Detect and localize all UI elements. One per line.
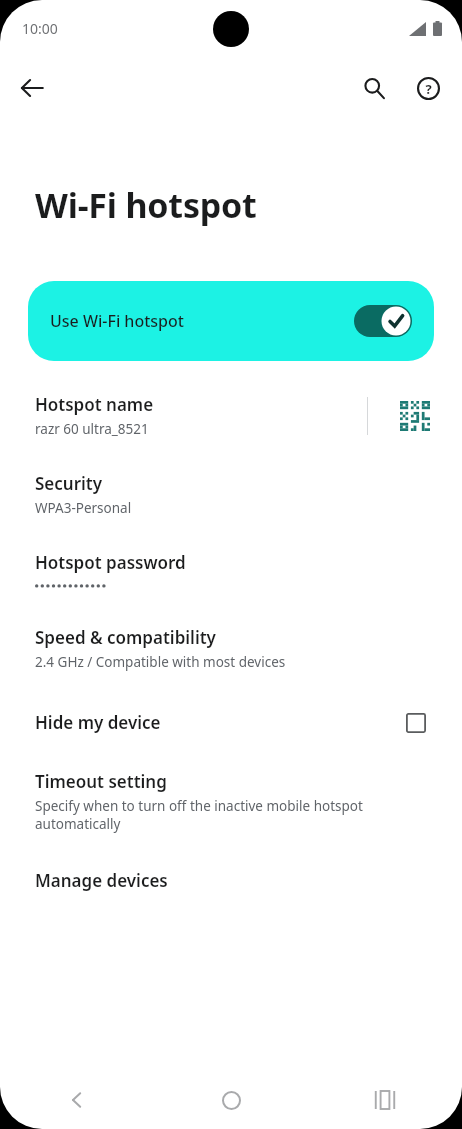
button[interactable]: Timeout setting xyxy=(0,766,462,837)
staticText: Use Wi-Fi hotspot xyxy=(50,310,354,332)
button[interactable]: Speed & compatibility xyxy=(0,622,462,675)
staticText: ? xyxy=(425,80,432,98)
button[interactable]: Home xyxy=(154,1071,308,1129)
staticText: 2.4 GHz / Compatible with most devices xyxy=(35,653,286,671)
staticText: Hotspot name xyxy=(35,393,154,416)
staticText: Security xyxy=(35,472,103,495)
button[interactable]: Share hotspot QR code xyxy=(368,389,462,443)
button[interactable]: Recent apps xyxy=(308,1071,462,1129)
button[interactable]: Hotspot name xyxy=(0,387,462,444)
staticText: razr 60 ultra_8521 xyxy=(35,420,149,438)
staticText: Timeout setting xyxy=(35,770,167,793)
button[interactable]: Hotspot password xyxy=(0,547,462,596)
button[interactable]: Use Wi-Fi hotspot xyxy=(28,281,434,361)
staticText: Hotspot password xyxy=(35,551,186,574)
staticText: Wi-Fi hotspot xyxy=(35,182,257,228)
button[interactable]: Search xyxy=(351,65,397,111)
staticText: WPA3-Personal xyxy=(35,499,132,517)
staticText: Manage devices xyxy=(35,869,168,892)
staticText: 10:00 xyxy=(22,19,58,38)
staticText: Specify when to turn off the inactive mo… xyxy=(35,797,434,833)
button[interactable]: Help xyxy=(405,65,451,111)
button[interactable]: Manage devices xyxy=(0,865,462,896)
staticText: Hide my device xyxy=(35,711,405,734)
button[interactable]: Back xyxy=(8,64,56,112)
button[interactable]: Hide my device xyxy=(0,703,462,742)
staticText: Speed & compatibility xyxy=(35,626,216,649)
button[interactable]: Security xyxy=(0,468,462,521)
button[interactable]: Back xyxy=(0,1071,154,1129)
button[interactable]: Wi-Fi hotspot on xyxy=(354,305,412,337)
